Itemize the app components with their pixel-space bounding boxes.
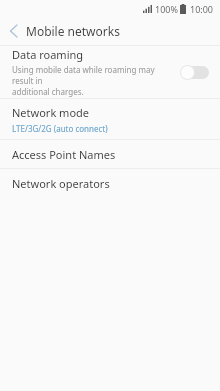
button[interactable]: Network operators [0,169,220,197]
button[interactable]: Back [0,17,26,45]
staticText: Using mobile data while roaming may resu… [12,64,174,97]
button[interactable]: Access Point Names [0,140,220,168]
staticText: Access Point Names [12,147,116,162]
staticText: Network operators [12,176,110,191]
staticText: 100% [155,3,178,15]
staticText: Mobile networks [26,23,120,39]
button[interactable]: Data roaming [0,46,220,98]
button[interactable]: Data roaming toggle [180,63,210,81]
staticText: LTE/3G/2G (auto connect) [12,123,108,134]
staticText: 10:00 [190,3,214,15]
button[interactable]: Network mode [0,99,220,139]
staticText: Network mode [12,105,90,120]
staticText: Data roaming [12,47,84,62]
